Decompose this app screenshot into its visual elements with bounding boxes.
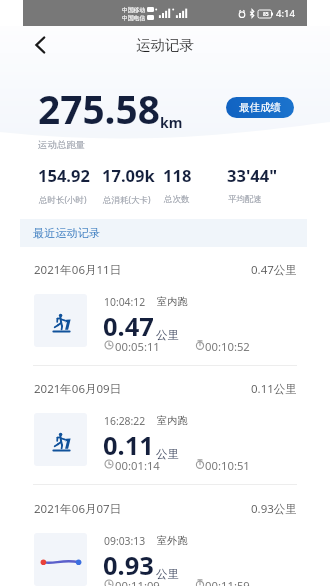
staticText: 平均配速 (228, 194, 262, 205)
staticText: 运动记录 (136, 36, 194, 54)
staticText: 4:14 (276, 7, 295, 20)
staticText: 00:01:14 (115, 458, 160, 473)
staticText: 公里 (156, 567, 179, 581)
staticText: 09:03:13 (104, 534, 146, 548)
staticText: 00:05:11 (115, 339, 160, 354)
staticText: 10:04:12 (104, 295, 146, 309)
button[interactable]: 2021年06月07日 (0, 503, 330, 586)
staticText: 公里 (156, 328, 179, 342)
staticText: 室内跑 (157, 295, 188, 308)
staticText: 总时长(小时) (39, 194, 87, 206)
button[interactable]: 2021年06月09日 (0, 383, 330, 502)
staticText: 室内跑 (157, 414, 188, 427)
staticText: 总次数 (164, 194, 190, 205)
button[interactable]: Back (27, 32, 53, 58)
staticText: 0.47 (103, 309, 154, 344)
staticText: 中国电信 (122, 14, 146, 21)
staticText: 最近运动记录 (33, 226, 101, 240)
staticText: 运动总跑量 (38, 139, 85, 151)
staticText: 17.09k (102, 164, 155, 186)
staticText: 00:11:09 (115, 578, 160, 586)
staticText: km (160, 113, 183, 132)
staticText: 33'44" (227, 164, 278, 186)
staticText: 154.92 (38, 164, 90, 186)
button[interactable]: 2021年06月11日 (0, 264, 330, 383)
staticText: 0.93公里 (251, 501, 297, 517)
staticText: 2021年06月11日 (34, 262, 122, 278)
staticText: 00:10:52 (205, 339, 250, 354)
staticText: 室外跑 (157, 534, 188, 547)
staticText: 0.11公里 (251, 381, 297, 397)
staticText: 275.58 (38, 83, 160, 136)
staticText: 00:11:59 (205, 578, 250, 586)
staticText: 85 (263, 11, 269, 18)
staticText: 0.11 (103, 428, 154, 463)
staticText: 总消耗(大卡) (103, 194, 151, 206)
button[interactable]: 最佳成绩 (226, 97, 294, 118)
staticText: 最佳成绩 (239, 101, 281, 114)
staticText: 0.93 (103, 548, 154, 583)
staticText: 中国移动 (122, 6, 146, 13)
staticText: 公里 (156, 447, 179, 461)
staticText: 2021年06月07日 (34, 501, 122, 517)
staticText: 0.47公里 (251, 262, 297, 278)
staticText: 00:10:51 (205, 458, 250, 473)
staticText: 16:28:22 (104, 414, 146, 428)
staticText: 118 (163, 164, 192, 186)
staticText: 2021年06月09日 (34, 381, 122, 397)
